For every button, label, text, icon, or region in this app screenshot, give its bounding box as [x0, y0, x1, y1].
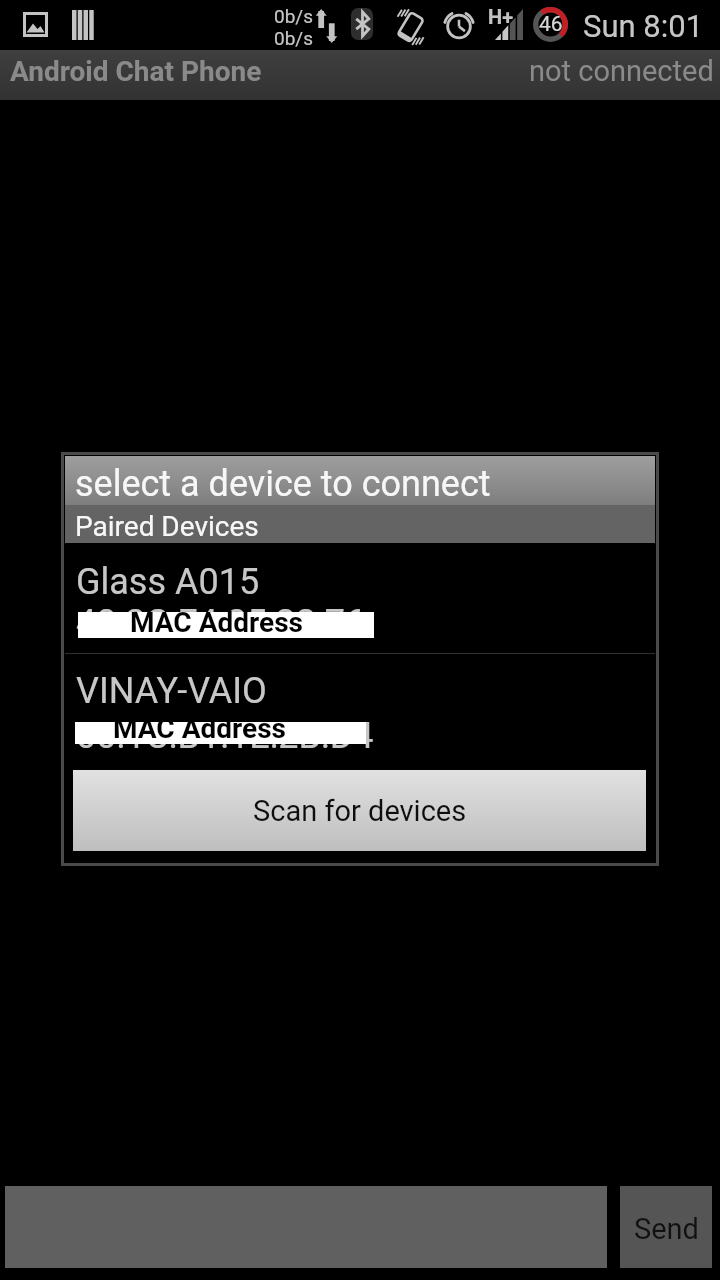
staticText: select a device to connect [75, 463, 491, 505]
staticText: Sun 8:01 [583, 8, 704, 44]
staticText: Paired Devices [75, 510, 259, 543]
staticText: 0b/s [274, 5, 313, 27]
button[interactable]: Glass A015 [65, 543, 655, 653]
button[interactable]: Scan for devices [73, 770, 646, 851]
staticText: 40:2C:F4:85:32:76 [76, 602, 366, 644]
staticText: Android Chat Phone [10, 55, 262, 88]
staticText: not connected [529, 54, 714, 88]
staticText: Scan for devices [253, 794, 467, 828]
button[interactable]: VINAY-VAIO [65, 654, 655, 768]
staticText: 0b/s [274, 27, 313, 49]
staticText: 00:1C:B1:1E:2B:D4 [76, 715, 374, 757]
staticText: VINAY-VAIO [76, 670, 267, 712]
staticText: H+ [488, 5, 514, 28]
staticText: 46 [539, 12, 563, 37]
button[interactable]: Send [620, 1186, 712, 1268]
staticText: MAC Address [113, 712, 287, 745]
staticText: Send [634, 1212, 699, 1246]
staticText: Glass A015 [76, 561, 260, 603]
staticText: MAC Address [130, 606, 304, 639]
